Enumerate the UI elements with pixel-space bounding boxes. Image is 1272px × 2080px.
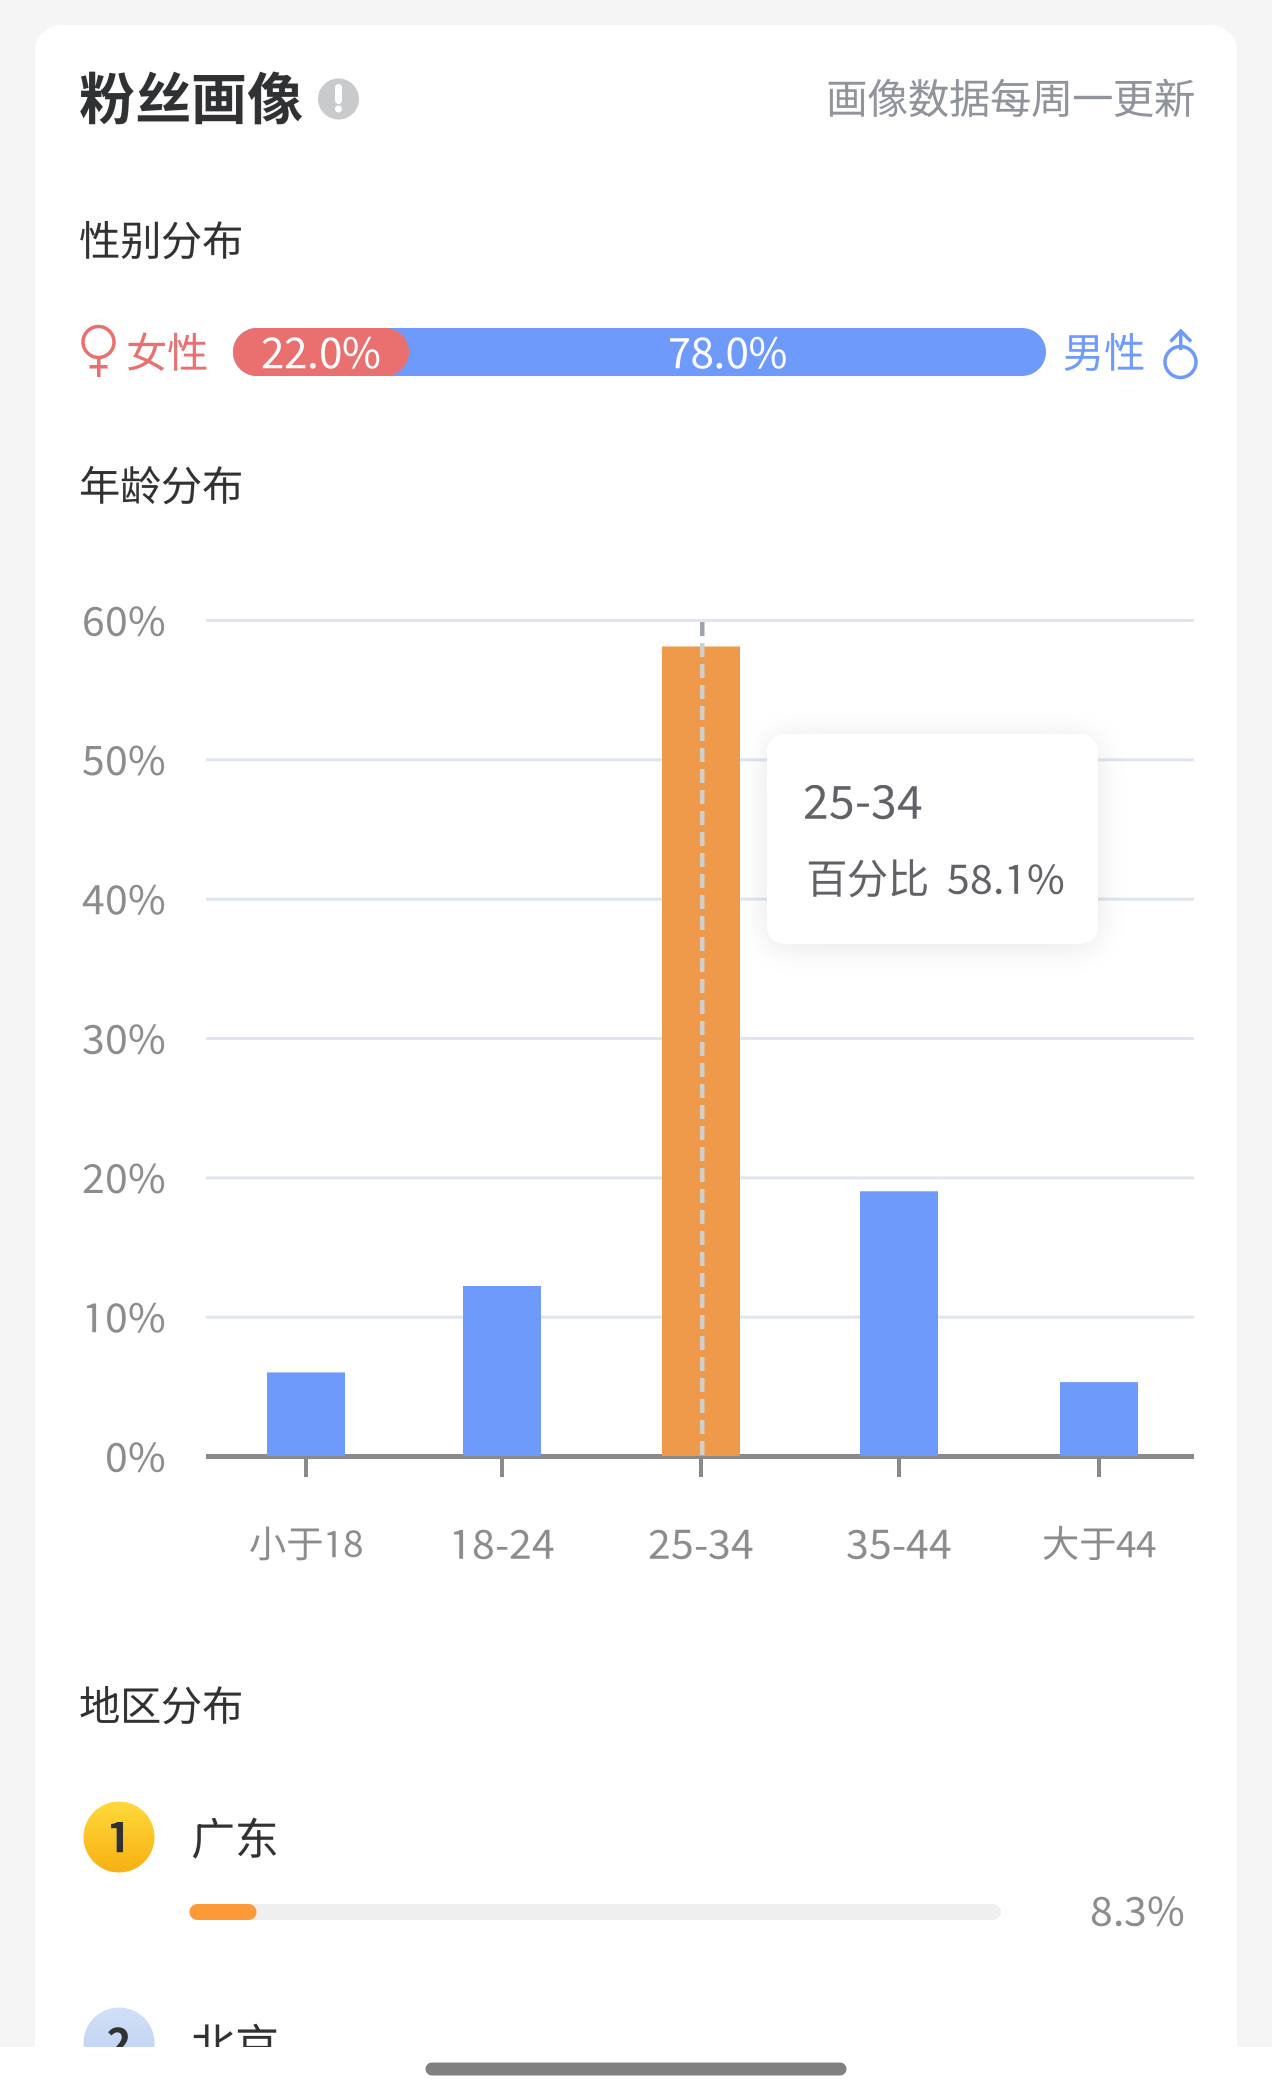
staticText: 20%	[82, 1153, 166, 1202]
button[interactable]: 1	[0, 0, 1272, 2080]
staticText: 8.3%	[1090, 1886, 1185, 1934]
staticText: 18-24	[449, 1519, 555, 1567]
button[interactable]: 粉丝画像	[0, 0, 1272, 2080]
staticText: 2	[106, 2017, 131, 2067]
staticText: 1	[106, 1811, 131, 1861]
staticText: 男性	[1063, 328, 1145, 376]
staticText: 百分比 58.1%	[806, 854, 1065, 902]
staticText: 年龄分布	[79, 461, 243, 509]
staticText: 地区分布	[79, 1681, 243, 1729]
staticText: 50%	[82, 735, 166, 784]
staticText: 22.0%	[261, 327, 381, 377]
staticText: 大于44	[1042, 1521, 1156, 1565]
staticText: 40%	[82, 874, 166, 923]
staticText: 25-34	[648, 1519, 754, 1567]
staticText: 广东	[191, 1812, 279, 1864]
staticText: 小于18	[249, 1521, 363, 1565]
staticText: 画像数据每周一更新	[826, 74, 1195, 122]
staticText: 30%	[82, 1014, 166, 1062]
staticText: 10%	[82, 1292, 166, 1341]
staticText: 粉丝画像	[79, 65, 303, 131]
button[interactable]: 2	[0, 0, 1272, 2080]
staticText: 0%	[105, 1432, 166, 1480]
staticText: 性别分布	[79, 216, 243, 264]
staticText: 北京	[191, 2018, 279, 2070]
staticText: 35-44	[846, 1519, 952, 1567]
staticText: 60%	[82, 596, 166, 644]
staticText: 25-34	[803, 772, 923, 828]
staticText: 女性	[126, 328, 208, 376]
staticText: 78.0%	[667, 327, 787, 377]
